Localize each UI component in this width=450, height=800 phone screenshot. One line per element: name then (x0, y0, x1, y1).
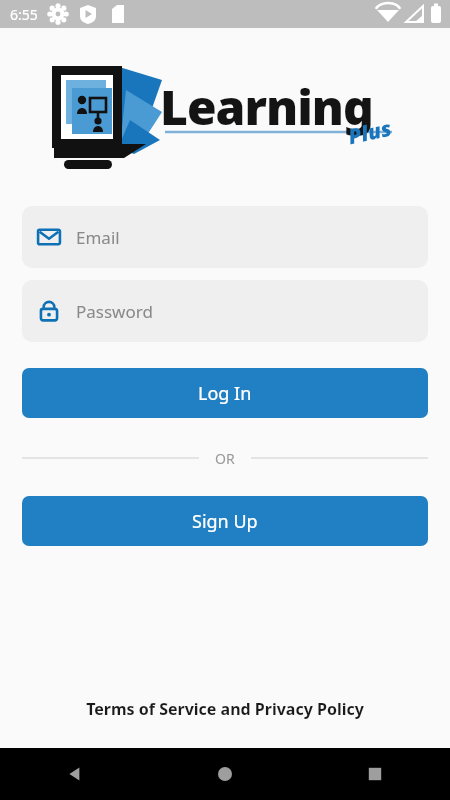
button[interactable]: Back (0, 748, 150, 800)
staticText: Password (76, 300, 153, 323)
staticText: OR (215, 449, 235, 468)
staticText: Learning (160, 74, 373, 139)
staticText: Sign Up (192, 509, 258, 534)
button[interactable]: Password (22, 280, 428, 342)
button[interactable]: Recents (300, 748, 450, 800)
staticText: Plus (345, 114, 395, 151)
staticText: 6:55 (10, 5, 38, 24)
button[interactable]: Sign Up (22, 496, 428, 546)
staticText: Email (76, 226, 120, 249)
button[interactable]: Email (22, 206, 428, 268)
staticText: Log In (198, 381, 252, 406)
button[interactable]: Home (150, 748, 300, 800)
button[interactable]: Log In (22, 368, 428, 418)
button[interactable]: Terms of Service and Privacy Policy (0, 692, 450, 726)
